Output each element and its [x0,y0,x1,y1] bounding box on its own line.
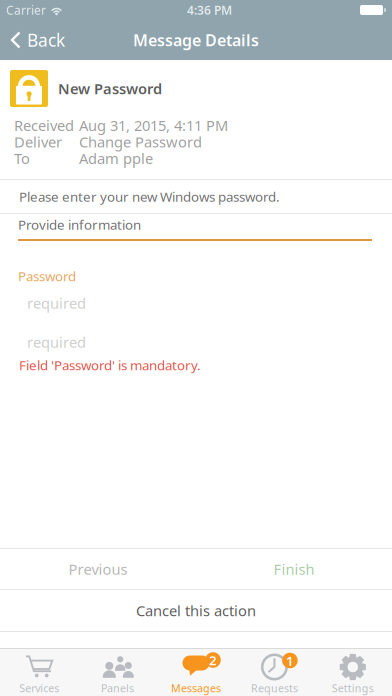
staticText: Change Password [79,132,202,151]
staticText: Previous [68,559,127,579]
staticText: Message Details [133,29,259,51]
staticText: Cancel this action [136,601,256,620]
button[interactable]: Panels [78,648,157,696]
staticText: 1 [286,652,294,669]
button[interactable]: Cancel this action [0,590,392,631]
staticText: 2 [209,651,217,669]
staticText: Finish [273,559,314,579]
staticText: New Password [58,79,162,98]
button[interactable]: Back [0,20,77,60]
staticText: Field 'Password' is mandatory. [19,356,201,374]
staticText: Panels [101,681,134,695]
staticText: Messages [171,681,221,695]
button[interactable]: Services [0,648,78,696]
staticText: Please enter your new Windows password. [19,188,280,205]
button[interactable]: 2 [157,648,235,696]
button[interactable]: 1 [235,648,314,696]
staticText: Provide information [18,216,141,233]
staticText: Password [18,267,76,285]
staticText: Deliver [14,132,62,151]
button[interactable]: Finish [196,549,392,589]
staticText: Received [14,115,74,135]
staticText: Carrier [6,2,46,18]
staticText: Aug 31, 2015, 4:11 PM [79,115,228,135]
staticText: Services [19,681,59,695]
staticText: To [14,148,30,168]
staticText: Adam pple [79,148,153,168]
button[interactable]: Previous [0,549,196,589]
staticText: 4:36 PM [187,2,232,18]
staticText: required [27,332,86,352]
staticText: Requests [251,681,298,695]
button[interactable]: Settings [314,648,392,696]
staticText: Settings [332,681,374,695]
staticText: Back [27,28,65,51]
staticText: required [27,293,86,313]
